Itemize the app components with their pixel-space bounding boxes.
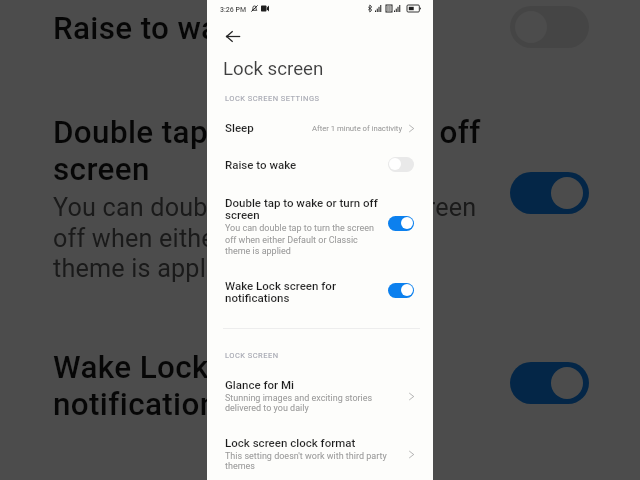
staticText: This setting doesn't work with third par… <box>225 451 387 471</box>
button[interactable] <box>207 112 433 144</box>
staticText: Lock screen clock format <box>225 436 356 449</box>
staticText: You can double tap to turn the screen of… <box>225 223 374 256</box>
button[interactable] <box>207 430 433 478</box>
staticText: Stunning images and exciting stories del… <box>225 393 373 413</box>
staticText: 3:26 PM <box>220 6 247 14</box>
staticText: Raise to wake <box>53 10 253 47</box>
button[interactable] <box>207 272 433 316</box>
button[interactable]: Switch on <box>388 283 414 298</box>
button[interactable] <box>207 150 433 182</box>
staticText: Lock screen <box>223 58 324 80</box>
staticText: Raise to wake <box>225 158 297 171</box>
button[interactable]: Switch off <box>388 157 414 172</box>
staticText: Double tap to wake or turn off screen <box>225 196 378 222</box>
staticText: Wake Lock screen for notifications <box>225 279 336 304</box>
button[interactable] <box>207 188 433 260</box>
button[interactable] <box>207 372 433 420</box>
staticText: LOCK SCREEN SETTINGS <box>225 94 320 103</box>
staticText: You can double tap to turn the screen of… <box>53 193 477 283</box>
staticText: Glance for Mi <box>225 378 294 391</box>
staticText: LOCK SCREEN <box>225 351 279 360</box>
staticText: After 1 minute of inactivity <box>312 124 403 133</box>
staticText: Double tap to wake or turn off screen <box>53 114 481 187</box>
button[interactable]: Switch on <box>388 216 414 231</box>
staticText: Sleep <box>225 121 254 134</box>
button[interactable]: Back <box>217 24 249 49</box>
staticText: Wake Lock screen for notifications <box>53 349 363 423</box>
